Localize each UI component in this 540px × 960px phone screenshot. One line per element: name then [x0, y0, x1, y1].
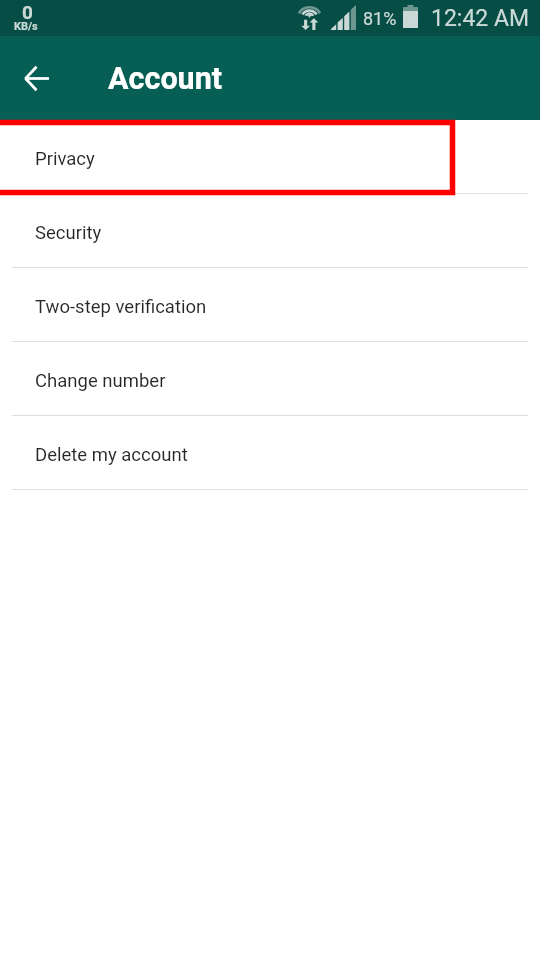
staticText: 81% — [363, 8, 397, 29]
staticText: Change number — [35, 370, 166, 392]
staticText: KB/s — [14, 20, 38, 33]
button[interactable]: Security — [0, 194, 540, 268]
button[interactable]: Change number — [0, 342, 540, 416]
staticText: Privacy — [35, 148, 95, 170]
staticText: 0 — [22, 1, 33, 23]
button[interactable]: Privacy — [0, 120, 540, 194]
button[interactable]: Back — [12, 54, 60, 102]
staticText: Delete my account — [35, 444, 188, 466]
staticText: Account — [108, 61, 223, 97]
button[interactable]: Delete my account — [0, 416, 540, 490]
staticText: 12:42 AM — [431, 5, 530, 32]
staticText: Security — [35, 222, 102, 244]
staticText: Two-step verification — [35, 296, 207, 318]
button[interactable]: Two-step verification — [0, 268, 540, 342]
